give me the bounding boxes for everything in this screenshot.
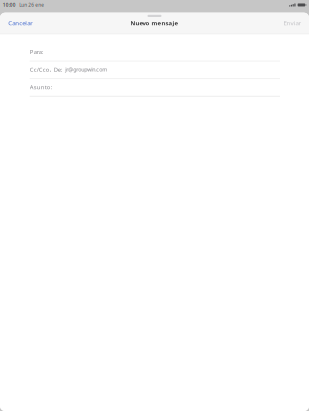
- staticText: Para:: [30, 48, 44, 56]
- button[interactable]: Para:: [0, 44, 309, 62]
- staticText: jr@groupwin.com: [65, 66, 107, 73]
- button[interactable]: Cc/Cco, De:: [0, 62, 309, 79]
- button[interactable]: Enviar: [278, 16, 309, 30]
- staticText: Cancelar: [8, 19, 33, 27]
- staticText: Lun 26 ene: [19, 2, 44, 8]
- staticText: Nuevo mensaje: [130, 19, 178, 27]
- staticText: Asunto:: [30, 83, 53, 91]
- button[interactable]: Asunto:: [0, 79, 309, 97]
- staticText: Enviar: [284, 19, 302, 27]
- staticText: Cc/Cco, De:: [30, 65, 63, 73]
- button[interactable]: Cancelar: [0, 16, 39, 30]
- staticText: 10:00: [3, 2, 16, 8]
